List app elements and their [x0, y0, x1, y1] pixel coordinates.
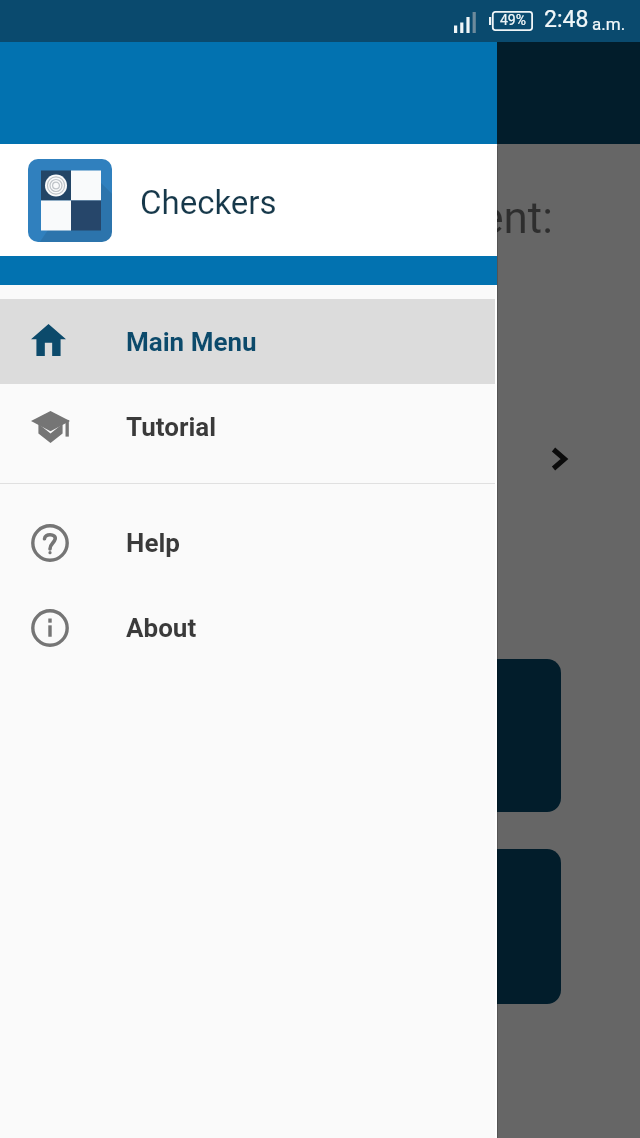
button[interactable]: Tutorial — [0, 384, 497, 469]
staticText: About — [126, 613, 197, 643]
staticText: Help — [126, 528, 180, 558]
staticText: Checkers — [140, 183, 277, 222]
staticText: Tutorial — [126, 412, 217, 442]
staticText: 2:48 — [544, 6, 589, 33]
button[interactable]: Main Menu — [0, 299, 497, 384]
button[interactable]: About — [0, 584, 497, 669]
staticText: 49% — [500, 12, 526, 28]
staticText: Main Menu — [126, 327, 257, 357]
staticText: a.m. — [592, 14, 626, 34]
staticText: Current opponent: — [201, 192, 553, 244]
button[interactable]: Next opponent — [534, 434, 584, 484]
button[interactable]: Help — [0, 499, 497, 584]
